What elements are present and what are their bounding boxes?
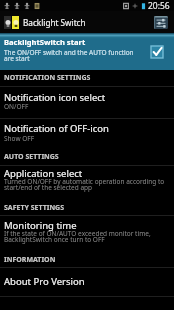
- staticText: Turned ON/OFF by automatic operation acc…: [4, 177, 170, 192]
- staticText: The ON/OFF switch and the AUTO function …: [4, 48, 141, 63]
- button[interactable]: Settings: [154, 16, 168, 29]
- staticText: Notification of OFF-icon: [4, 122, 170, 135]
- staticText: Show OFF: [4, 134, 170, 143]
- button[interactable]: About Pro Version: [0, 267, 174, 297]
- staticText: About Pro Version: [4, 275, 170, 288]
- staticText: ON/OFF: [4, 102, 170, 111]
- staticText: Notification icon select: [4, 91, 170, 104]
- staticText: Backlight Switch: [23, 17, 86, 28]
- button[interactable]: Monitoring time: [0, 215, 174, 255]
- staticText: Monitoring time: [4, 219, 170, 232]
- staticText: Application select: [4, 167, 170, 180]
- staticText: 20:56: [148, 0, 170, 11]
- staticText: BacklightSwitch start: [4, 37, 86, 47]
- staticText: AUTO SETTINGS: [4, 152, 170, 162]
- staticText: If the state of ON/AUTO exceeded monitor…: [4, 229, 170, 244]
- button[interactable]: Notification icon select: [0, 86, 174, 118]
- button[interactable]: BacklightSwitch start: [0, 33, 174, 70]
- staticText: INFORMATION: [4, 255, 170, 265]
- staticText: SAFETY SETTINGS: [4, 203, 170, 213]
- staticText: NOTIFICATION SETTINGS: [4, 73, 170, 83]
- button[interactable]: Application select: [0, 165, 174, 203]
- button[interactable]: Notification of OFF-icon: [0, 118, 174, 148]
